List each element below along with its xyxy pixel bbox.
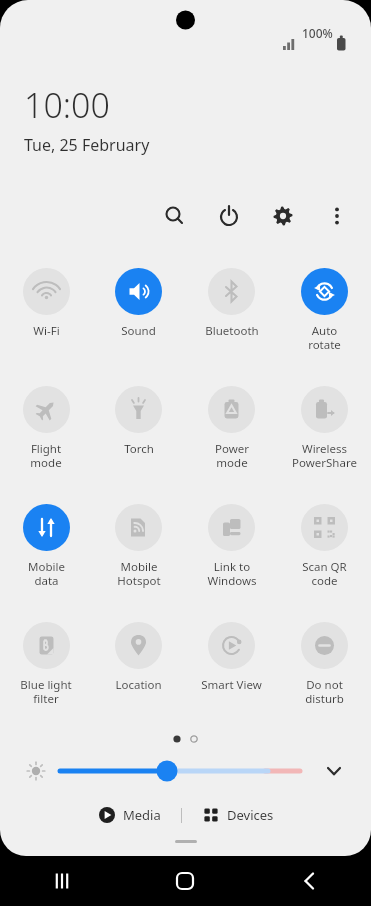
staticText: 10:00 <box>24 82 110 128</box>
staticText: Blue light filter <box>20 677 72 706</box>
staticText: Auto rotate <box>308 323 341 352</box>
staticText: Location <box>115 677 162 693</box>
staticText: Sound <box>121 323 156 339</box>
button[interactable]: More options <box>317 196 357 236</box>
staticText: Mobile Hotspot <box>117 559 161 588</box>
staticText: Wi-Fi <box>33 323 60 339</box>
button[interactable]: Auto rotate <box>278 259 371 352</box>
button[interactable]: Location <box>92 613 185 693</box>
button[interactable]: Scan QR code <box>278 495 371 588</box>
staticText: Bluetooth <box>205 323 259 339</box>
staticText: Do not disturb <box>305 677 344 706</box>
button[interactable]: Sound <box>92 259 185 339</box>
button[interactable]: Media <box>92 803 167 827</box>
staticText: Wireless PowerShare <box>292 441 357 470</box>
staticText: Power mode <box>215 441 249 470</box>
staticText: Torch <box>124 441 154 457</box>
button[interactable]: Smart View <box>185 613 278 693</box>
button[interactable]: Do not disturb <box>278 613 371 706</box>
button[interactable]: Recents <box>0 856 123 906</box>
staticText: Tue, 25 February <box>24 134 150 156</box>
button[interactable]: Expand brightness settings <box>327 752 371 790</box>
button[interactable]: Torch <box>92 377 185 457</box>
button[interactable]: Settings <box>263 196 303 236</box>
button[interactable]: Wi-Fi <box>0 259 92 339</box>
staticText: Smart View <box>201 677 262 693</box>
button[interactable]: Mobile Hotspot <box>92 495 185 588</box>
staticText: Scan QR code <box>302 559 347 588</box>
button[interactable]: Search <box>155 196 195 236</box>
staticText: Link to Windows <box>207 559 257 588</box>
staticText: Devices <box>227 806 274 824</box>
button[interactable]: Mobile data <box>0 495 92 588</box>
button[interactable]: Wireless PowerShare <box>278 377 371 470</box>
button[interactable]: Flight mode <box>0 377 92 470</box>
button[interactable]: Power mode <box>185 377 278 470</box>
button[interactable]: Power <box>209 196 249 236</box>
button[interactable]: Blue light filter <box>0 613 92 706</box>
button[interactable]: Link to Windows <box>185 495 278 588</box>
staticText: Flight mode <box>30 441 62 470</box>
staticText: 100% <box>302 25 333 41</box>
button[interactable]: Devices <box>196 803 280 827</box>
staticText: Media <box>123 806 161 824</box>
button[interactable]: Home <box>123 856 247 906</box>
staticText: Mobile data <box>28 559 65 588</box>
button[interactable]: Back <box>247 856 371 906</box>
button[interactable]: Bluetooth <box>185 259 278 339</box>
